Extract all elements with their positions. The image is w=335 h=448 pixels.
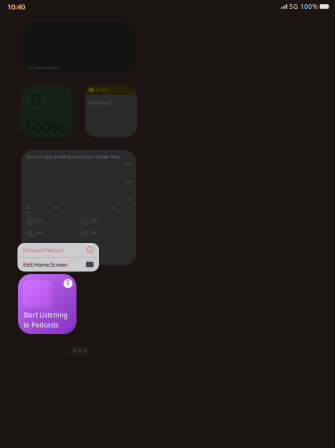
button[interactable]: Notes	[85, 85, 137, 137]
staticText: Notes	[95, 86, 109, 93]
staticText: Start Listening	[23, 311, 67, 319]
staticText: 18	[110, 205, 114, 210]
staticText: 100%	[24, 116, 64, 137]
staticText: No Notes	[88, 99, 110, 106]
staticText: Turn on App & Website Activity in Screen…	[26, 154, 120, 160]
staticText: 0m	[127, 197, 132, 202]
button[interactable]: Turn on App & Website Activity in Screen…	[21, 150, 136, 265]
staticText: 5G	[289, 2, 298, 11]
staticText: 06	[54, 205, 58, 210]
staticText: to Podcasts	[23, 321, 58, 329]
staticText: 10:40	[7, 1, 25, 12]
staticText: 100%	[300, 2, 317, 11]
button[interactable]: 100%	[21, 85, 73, 137]
staticText: 60m	[125, 161, 132, 166]
button[interactable]: Edit Home Screen	[17, 257, 99, 271]
button[interactable]: Remove Widget	[17, 243, 99, 257]
staticText: Remove Widget	[23, 246, 64, 254]
button[interactable]: Start Listening	[18, 274, 76, 334]
staticText: 00	[26, 205, 30, 210]
staticText: 12	[82, 205, 86, 210]
staticText: 30m	[125, 179, 132, 184]
staticText: No photos available	[27, 65, 60, 70]
staticText: Edit Home Screen	[23, 261, 68, 268]
